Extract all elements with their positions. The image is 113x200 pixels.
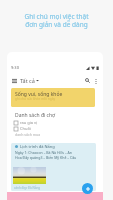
staticText: rau gia vị [20,120,38,125]
button[interactable]: Open navigation menu [10,76,19,85]
staticText: cảnh đẹp Đà Nẵng [14,186,41,190]
button[interactable]: Lịch trình đà Nẵng [11,143,96,191]
staticText: Sống vui, sống khỏe [15,91,63,98]
staticText: Ngày 1: Chacoon – Bà Nà Hills – An [15,150,72,155]
staticText: Lịch trình đà Nẵng [20,144,55,149]
staticText: ghi chú sức khỏe mỗi ngày [15,97,56,101]
staticText: danh sách mua [15,132,41,137]
staticText: Tất cả [20,77,35,84]
button[interactable]: Add note [82,183,93,194]
staticText: Ghi chú mọi việc thật đơn giản và dễ dàn… [24,12,89,29]
button[interactable]: Sống vui, sống khỏe [11,88,95,107]
staticText: Danh sách đi chợ [15,112,56,119]
button[interactable]: Tất cả [20,77,39,84]
button[interactable]: Search [83,76,92,85]
staticText: Hoa Đây quảng3 – Biển Mỹ Khê – Cầu [15,155,77,160]
staticText: 9:30 [11,65,19,70]
button[interactable]: More options [92,77,100,85]
staticText: Chuối [20,126,31,131]
button[interactable]: Danh sách đi chợ [11,108,95,142]
button[interactable]: Chuối [14,126,31,131]
button[interactable]: rau gia vị [14,120,38,125]
